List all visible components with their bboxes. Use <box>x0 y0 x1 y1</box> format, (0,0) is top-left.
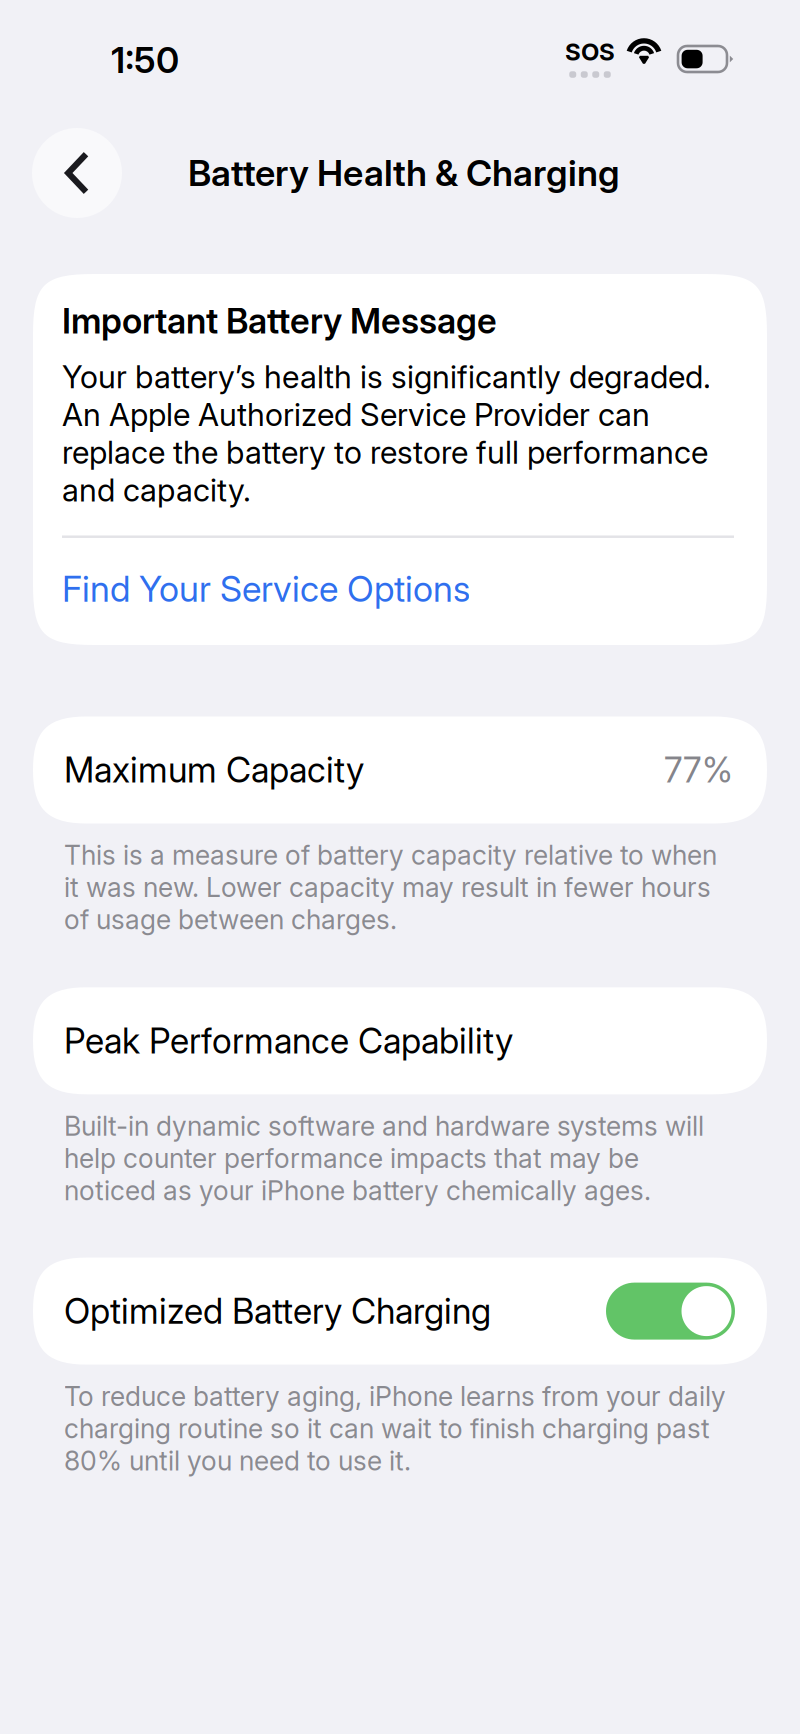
staticText: Important Battery Message <box>62 300 497 342</box>
button[interactable]: Optimized Battery Charging <box>606 1283 735 1340</box>
staticText: SOS <box>565 37 615 66</box>
staticText: 1:50 <box>111 38 179 82</box>
staticText: This is a measure of battery capacity re… <box>64 839 717 936</box>
staticText: To reduce battery aging, iPhone learns f… <box>64 1380 726 1477</box>
button[interactable]: Back <box>32 128 122 218</box>
staticText: Find Your Service Options <box>62 568 470 610</box>
staticText: Peak Performance Capability <box>64 1020 513 1062</box>
staticText: Battery Health & Charging <box>188 151 620 195</box>
staticText: Built-in dynamic software and hardware s… <box>64 1110 704 1207</box>
staticText: 77% <box>664 749 733 791</box>
staticText: Maximum Capacity <box>64 749 364 791</box>
staticText: Your battery’s health is significantly d… <box>62 358 711 509</box>
staticText: Optimized Battery Charging <box>64 1290 491 1332</box>
button[interactable]: Find Your Service Options <box>62 567 734 611</box>
